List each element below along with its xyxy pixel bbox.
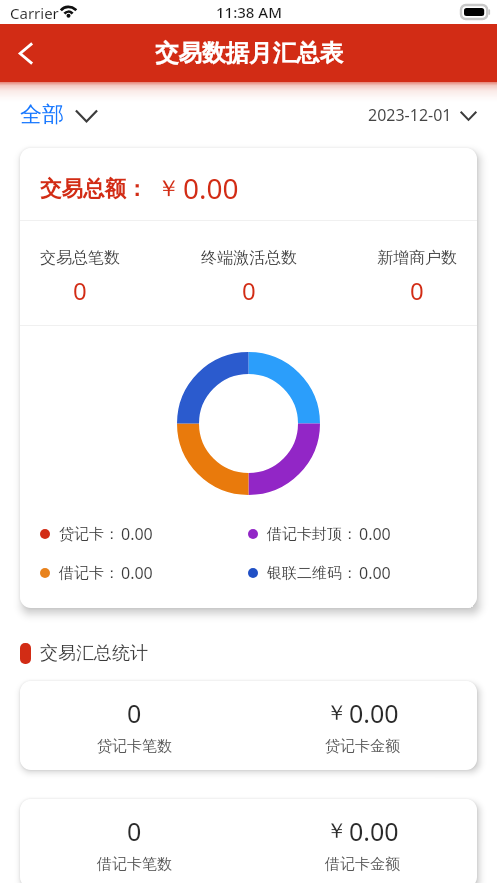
button[interactable]: 全部	[20, 101, 98, 129]
staticText: 0.00	[349, 696, 399, 730]
staticText: 借记卡：	[59, 564, 119, 583]
staticText: 新增商户数	[377, 248, 457, 268]
staticText: ￥	[326, 818, 347, 844]
staticText: 交易总笔数	[40, 248, 120, 268]
staticText: 借记卡封顶：	[267, 525, 357, 544]
staticText: 0	[73, 274, 87, 307]
staticText: 0.00	[359, 523, 391, 545]
staticText: 0	[127, 814, 142, 848]
staticText: ￥	[157, 174, 180, 203]
staticText: 0.00	[183, 169, 239, 207]
staticText: 交易汇总统计	[40, 642, 148, 665]
staticText: 交易数据月汇总表	[155, 38, 343, 68]
staticText: 0.00	[121, 562, 153, 584]
staticText: 0	[242, 274, 256, 307]
staticText: 0.00	[121, 523, 153, 545]
staticText: 银联二维码：	[267, 564, 357, 583]
staticText: Carrier	[10, 3, 59, 23]
staticText: 0	[410, 274, 424, 307]
staticText: 终端激活总数	[201, 248, 297, 268]
button[interactable]: 2023-12-01	[368, 104, 477, 126]
staticText: 0	[127, 696, 142, 730]
staticText: 贷记卡笔数	[97, 737, 172, 756]
button[interactable]: Back	[4, 31, 48, 75]
staticText: 贷记卡金额	[325, 737, 400, 756]
staticText: 0.00	[349, 814, 399, 848]
staticText: 借记卡笔数	[97, 855, 172, 874]
staticText: 2023-12-01	[368, 104, 452, 126]
staticText: 借记卡金额	[325, 855, 400, 874]
staticText: 贷记卡：	[59, 525, 119, 544]
button[interactable]: 0	[20, 681, 477, 770]
staticText: ￥	[326, 700, 347, 726]
staticText: 0.00	[359, 562, 391, 584]
staticText: 全部	[20, 101, 64, 129]
staticText: 11:38 AM	[216, 2, 282, 22]
button[interactable]: 0	[20, 799, 477, 883]
staticText: 交易总额：	[40, 175, 148, 202]
